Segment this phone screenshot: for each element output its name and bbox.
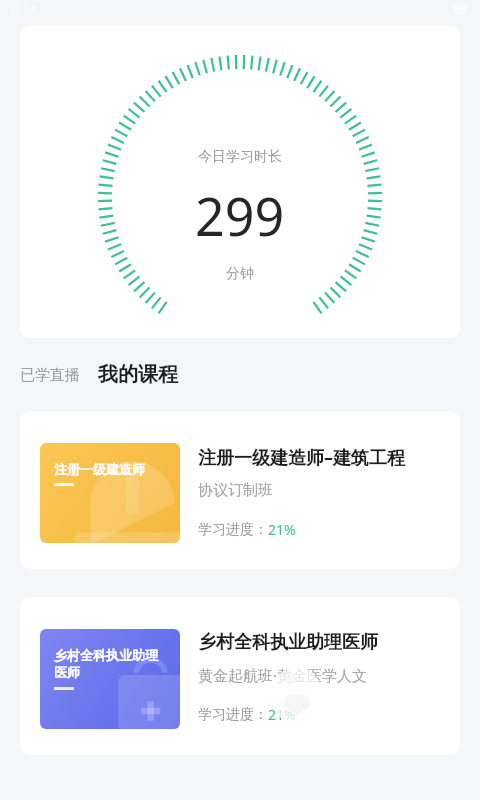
staticText: 学习进度： (198, 706, 268, 724)
staticText: 学习进度： (198, 521, 268, 539)
staticText: 协议订制班 (198, 481, 273, 500)
button[interactable]: 我的课程 (98, 360, 178, 389)
button[interactable]: 今日学习时长 (20, 26, 460, 338)
staticText: 21% (268, 520, 296, 539)
staticText: 注册一级建造师–建筑工程 (198, 445, 405, 470)
staticText: 注册一级建造师 (54, 461, 166, 477)
staticText: 21% (268, 705, 296, 724)
staticText: 分钟 (226, 265, 254, 283)
staticText: 乡村全科执业助理医师 (198, 631, 378, 654)
button[interactable]: 注册一级建造师 (20, 411, 460, 569)
staticText: 今日学习时长 (198, 148, 282, 166)
button[interactable]: 乡村全科执业助理医师 (20, 597, 460, 755)
staticText: 乡村全科执业助理医师 (54, 647, 166, 681)
button[interactable]: 已学直播 (20, 362, 80, 389)
staticText: 黄金起航班·黄金医学人文 (198, 665, 368, 685)
staticText: 我的课程 (98, 362, 178, 387)
staticText: 299 (195, 180, 285, 251)
staticText: 已学直播 (20, 366, 80, 385)
